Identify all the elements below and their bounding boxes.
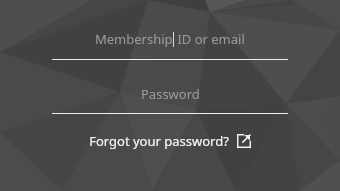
button[interactable]: Membership — [52, 26, 288, 52]
staticText: Membership — [95, 30, 173, 48]
other: Open in new window — [237, 134, 251, 148]
staticText: ID or email — [174, 30, 245, 48]
staticText: Password — [141, 85, 200, 103]
button[interactable]: Password — [52, 82, 288, 106]
button[interactable]: Forgot your password? — [85, 130, 255, 152]
staticText: Forgot your password? — [89, 132, 229, 150]
